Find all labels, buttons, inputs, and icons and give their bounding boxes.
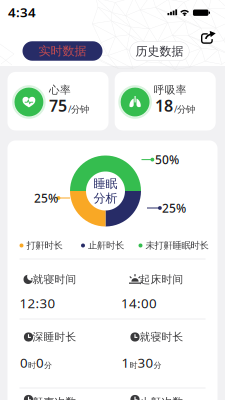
staticText: 4:34 <box>8 3 36 21</box>
staticText: 分 <box>44 360 52 370</box>
staticText: 时 <box>129 360 137 370</box>
staticText: 1 <box>121 354 129 371</box>
staticText: 25% <box>34 190 58 206</box>
staticText: 打鼾时长 <box>26 240 62 251</box>
staticText: 0 <box>20 354 28 371</box>
staticText: 就寝时间 <box>32 273 76 286</box>
staticText: 未打鼾睡眠时长 <box>145 240 208 251</box>
staticText: 止鼾次数 <box>139 395 183 400</box>
staticText: 分析 <box>93 191 117 206</box>
staticText: /分钟 <box>174 103 195 115</box>
staticText: 呼吸率 <box>154 83 187 96</box>
button[interactable]: 实时数据 <box>22 41 102 61</box>
staticText: 50% <box>155 151 179 167</box>
button[interactable]: 心率 <box>7 72 108 130</box>
staticText: 鼾声次数 <box>32 395 76 400</box>
button[interactable]: 历史数据 <box>130 42 189 60</box>
staticText: 30 <box>137 354 153 371</box>
staticText: 分 <box>153 360 161 370</box>
staticText: 心率 <box>49 83 71 96</box>
staticText: 18 <box>155 95 173 116</box>
staticText: 25% <box>162 200 186 216</box>
staticText: 起床时间 <box>139 273 183 286</box>
staticText: 就寝时长 <box>139 330 183 343</box>
staticText: 14:00 <box>121 294 157 312</box>
staticText: 12:30 <box>19 294 55 312</box>
staticText: 止鼾时长 <box>88 240 124 251</box>
staticText: 深睡时长 <box>32 330 76 343</box>
staticText: 75 <box>49 95 67 116</box>
staticText: 历史数据 <box>135 44 183 58</box>
staticText: 时 <box>28 360 36 370</box>
staticText: 0 <box>36 354 44 371</box>
staticText: 睡眠 <box>93 176 117 191</box>
staticText: /分钟 <box>68 103 89 115</box>
button[interactable]: 分享 <box>200 30 216 46</box>
staticText: 实时数据 <box>38 44 86 58</box>
button[interactable]: 呼吸率 <box>115 72 216 130</box>
